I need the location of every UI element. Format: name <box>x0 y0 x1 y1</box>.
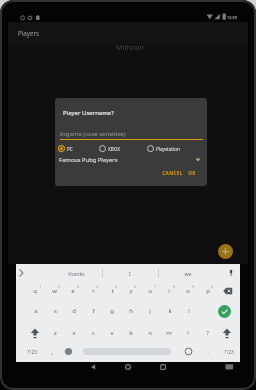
staticText: n <box>148 329 152 337</box>
button[interactable]: h <box>81 301 181 321</box>
staticText: t <box>111 287 114 295</box>
staticText: f <box>92 307 95 315</box>
button[interactable] <box>219 284 236 298</box>
button[interactable] <box>57 155 205 166</box>
button[interactable]: t <box>62 281 162 301</box>
button[interactable]: b <box>81 323 181 343</box>
button[interactable]: l <box>139 301 239 321</box>
button[interactable]: p <box>158 281 256 301</box>
button[interactable] <box>62 345 75 358</box>
staticText: ?123 <box>27 349 37 355</box>
button[interactable]: y <box>81 281 181 301</box>
button[interactable]: w <box>4 281 104 301</box>
staticText: 2 <box>58 285 60 289</box>
button[interactable] <box>57 142 97 155</box>
staticText: PC <box>67 146 73 152</box>
staticText: 0 <box>211 285 213 289</box>
staticText: r <box>92 287 95 295</box>
button[interactable]: f <box>43 301 143 321</box>
button[interactable]: OK <box>142 163 207 183</box>
button[interactable] <box>218 305 231 318</box>
button[interactable]: we <box>138 263 238 283</box>
button[interactable]: g <box>62 301 162 321</box>
button[interactable]: i <box>119 281 219 301</box>
button[interactable] <box>29 326 41 340</box>
button[interactable] <box>145 142 200 155</box>
staticText: v <box>110 329 114 337</box>
staticText: e <box>71 287 75 295</box>
button[interactable]: c <box>43 323 143 343</box>
button[interactable]: e <box>23 281 123 301</box>
staticText: q <box>33 287 37 295</box>
staticText: y <box>129 287 133 295</box>
staticText: a <box>34 307 38 315</box>
staticText: , <box>51 347 53 356</box>
button[interactable] <box>86 360 170 377</box>
staticText: thanks <box>68 270 85 277</box>
staticText: 9 <box>192 285 194 289</box>
button[interactable]: k <box>120 301 220 321</box>
button[interactable]: thanks <box>26 263 126 283</box>
button[interactable]: . <box>158 341 256 361</box>
staticText: 3 <box>77 285 79 289</box>
staticText: z <box>54 329 57 337</box>
staticText: . <box>207 347 209 355</box>
button[interactable] <box>182 345 195 358</box>
staticText: 6 <box>134 285 136 289</box>
staticText: h <box>129 307 133 315</box>
staticText: k <box>168 307 172 315</box>
button[interactable]: m <box>119 323 219 343</box>
button[interactable]: , <box>2 341 102 361</box>
button[interactable]: ? <box>157 323 256 343</box>
staticText: 7 <box>154 285 156 289</box>
staticText: Players <box>18 29 39 37</box>
staticText: Playstation <box>156 146 180 152</box>
staticText: l <box>188 307 190 315</box>
button[interactable]: u <box>100 281 200 301</box>
staticText: b <box>129 329 133 337</box>
button[interactable]: x <box>24 323 124 343</box>
staticText: Famous Pubg Players <box>59 156 118 164</box>
button[interactable]: a <box>0 301 86 321</box>
staticText: we <box>184 270 192 277</box>
staticText: p <box>206 287 210 295</box>
staticText: c <box>92 329 95 337</box>
button[interactable]: ?123 <box>179 342 256 362</box>
button[interactable]: CANCEL <box>122 163 207 183</box>
button[interactable] <box>98 142 142 155</box>
staticText: w <box>52 287 57 295</box>
staticText: Mithrain <box>116 43 144 53</box>
staticText: g <box>110 307 114 315</box>
button[interactable]: r <box>43 281 143 301</box>
staticText: s <box>54 307 57 315</box>
staticText: 5 <box>115 285 117 289</box>
button[interactable]: d <box>24 301 124 321</box>
button[interactable] <box>221 326 233 340</box>
staticText: 8 <box>173 285 175 289</box>
button[interactable]: n <box>100 323 200 343</box>
staticText: j <box>149 307 151 315</box>
button[interactable]: q <box>0 281 85 301</box>
staticText: 12:59 <box>227 15 237 20</box>
button[interactable]: o <box>138 281 238 301</box>
button[interactable]: ?123 <box>0 342 82 362</box>
staticText: ! <box>187 329 189 337</box>
staticText: I <box>129 270 131 277</box>
staticText: d <box>72 307 76 315</box>
button[interactable]: v <box>62 323 162 343</box>
staticText: o <box>186 287 190 295</box>
button[interactable] <box>218 244 233 259</box>
staticText: Player Username? <box>63 109 114 117</box>
button[interactable]: s <box>5 301 105 321</box>
staticText: OK <box>188 170 196 177</box>
staticText: 4 <box>96 285 98 289</box>
staticText: x <box>72 329 76 337</box>
staticText: ?123 <box>224 349 234 355</box>
staticText: CANCEL <box>162 170 183 177</box>
button[interactable]: z <box>5 323 105 343</box>
button[interactable]: ! <box>138 323 238 343</box>
button[interactable]: j <box>100 301 200 321</box>
button[interactable]: I <box>80 263 180 283</box>
staticText: ? <box>206 329 209 337</box>
